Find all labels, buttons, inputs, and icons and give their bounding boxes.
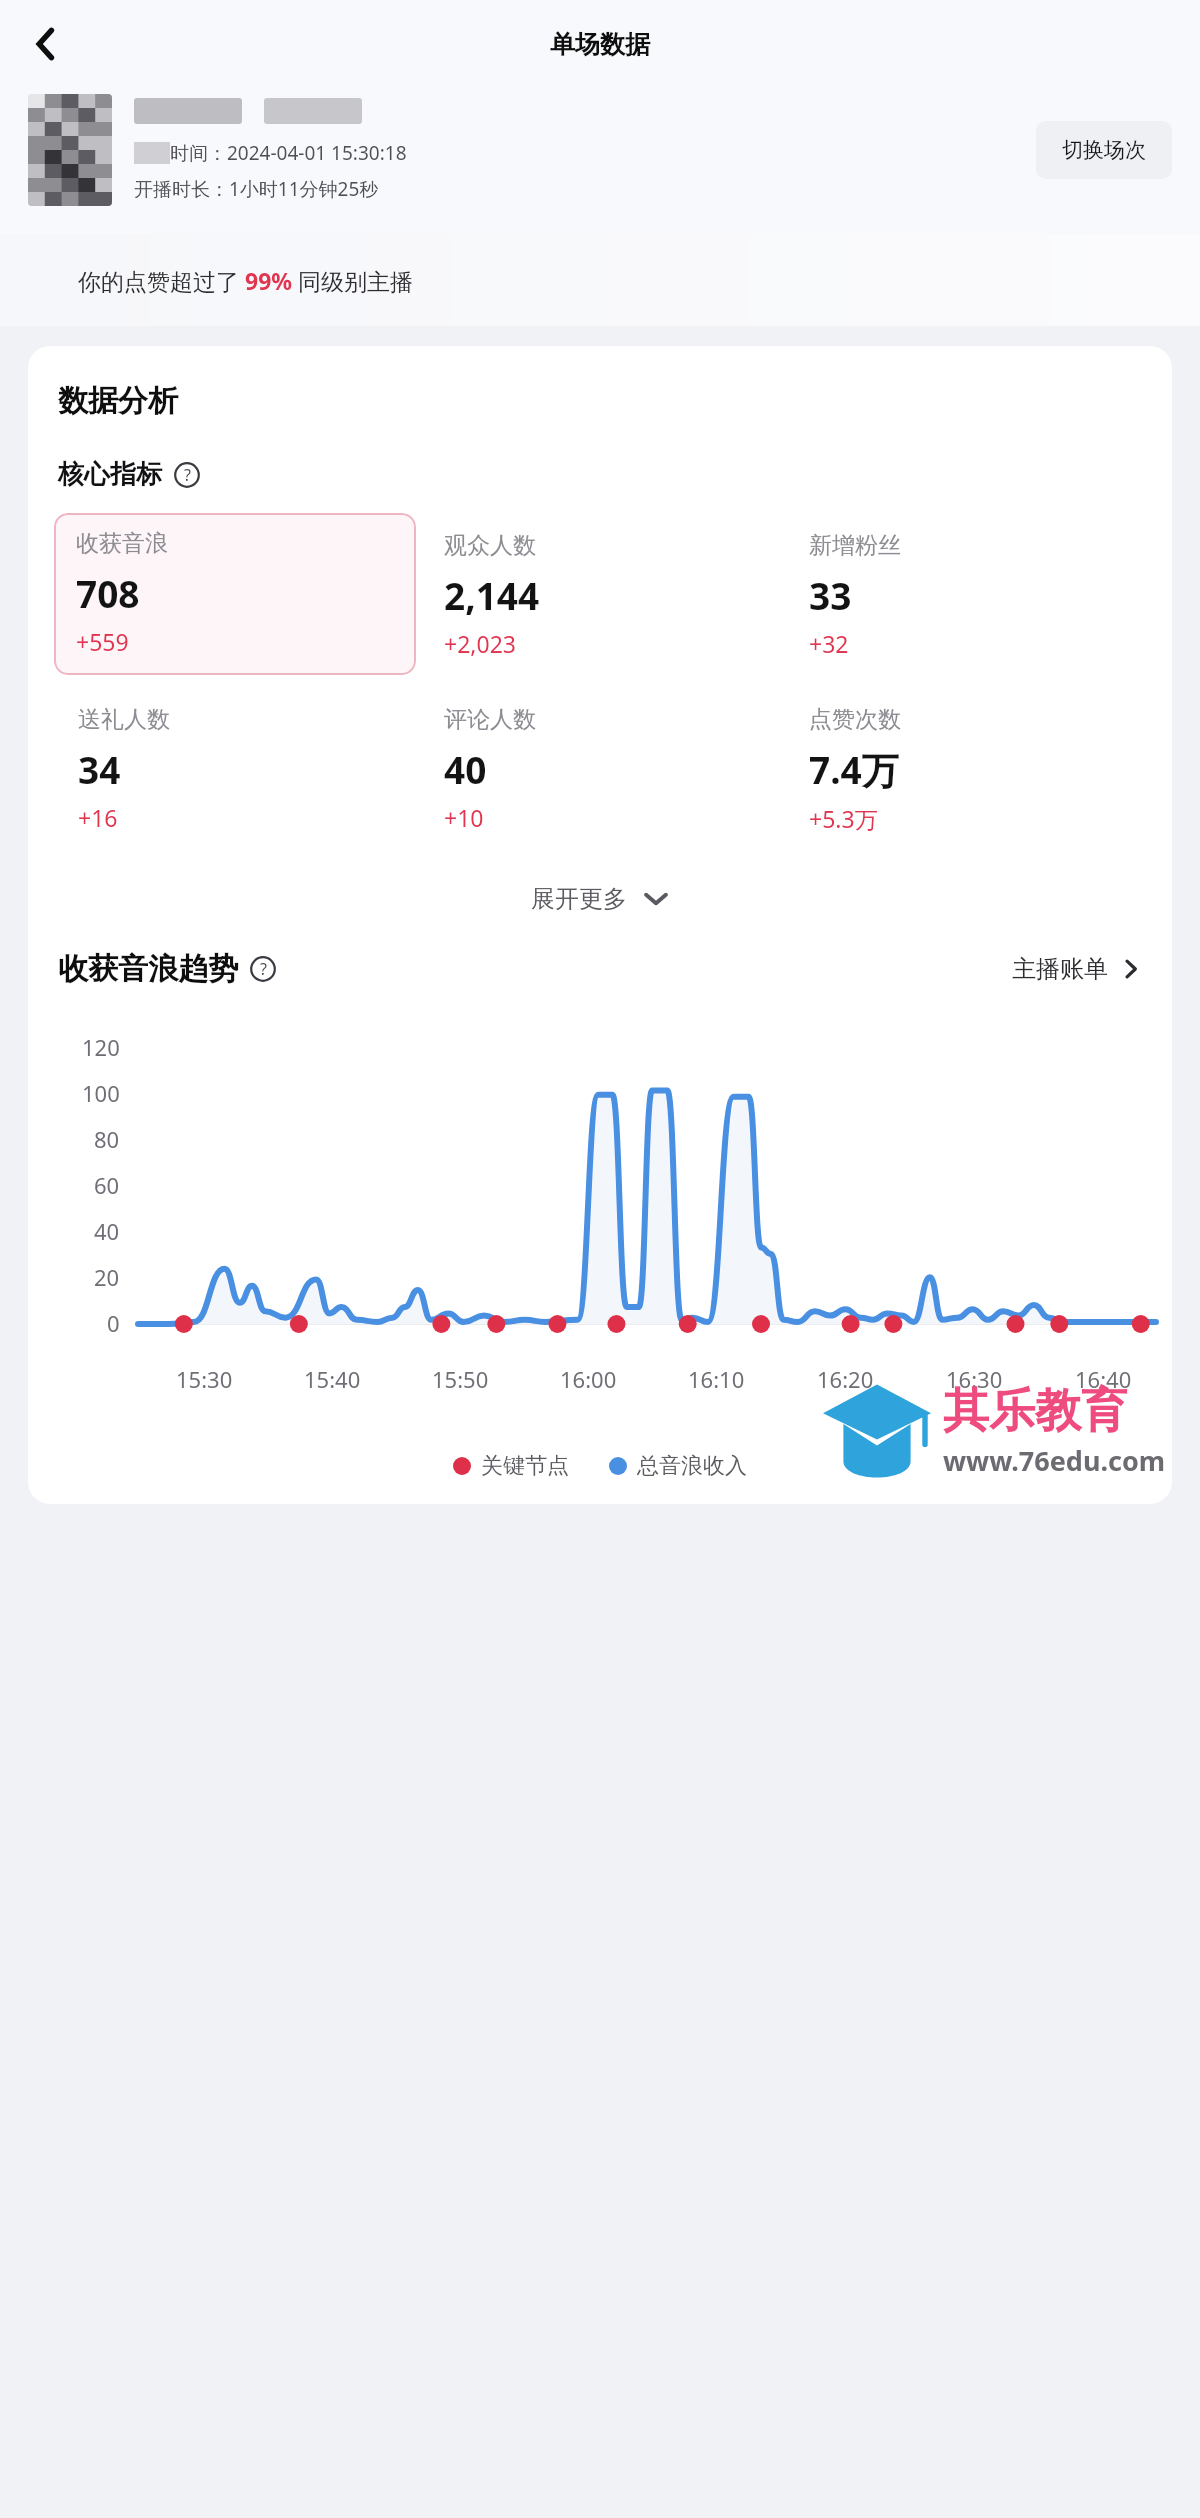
staticText: 15:40: [304, 1364, 361, 1394]
staticText: 数据分析: [58, 382, 178, 420]
staticText: 40: [94, 1216, 120, 1246]
staticText: 80: [94, 1124, 120, 1154]
staticText: 观众人数: [444, 531, 536, 560]
staticText: 33: [809, 570, 852, 620]
staticText: 34: [78, 744, 121, 794]
button[interactable]: 主播账单: [1012, 954, 1142, 984]
button[interactable]: 返回: [14, 12, 78, 76]
staticText: 核心指标: [58, 458, 162, 491]
staticText: 16:00: [560, 1364, 617, 1394]
staticText: +5.3万: [809, 803, 878, 834]
staticText: 708: [76, 568, 140, 618]
staticText: 16:20: [817, 1364, 874, 1394]
staticText: 切换场次: [1062, 137, 1146, 163]
button[interactable]: 送礼人数: [54, 687, 416, 851]
staticText: 其乐教育: [943, 1382, 1127, 1440]
staticText: 评论人数: [444, 705, 536, 734]
staticText: 15:30: [176, 1364, 233, 1394]
button[interactable]: 你的点赞超过了 99% 同级别主播: [0, 234, 1200, 326]
staticText: 点赞次数: [809, 705, 901, 734]
staticText: 20: [94, 1262, 120, 1292]
button[interactable]: 收获音浪: [54, 513, 416, 675]
button[interactable]: 点赞次数: [785, 687, 1146, 852]
staticText: 7.4万: [809, 744, 899, 795]
button[interactable]: 核心指标: [58, 458, 200, 491]
button[interactable]: 评论人数: [420, 687, 781, 851]
staticText: 60: [94, 1170, 120, 1200]
staticText: +16: [78, 802, 118, 833]
staticText: 100: [82, 1078, 120, 1108]
button[interactable]: 展开更多: [28, 870, 1172, 928]
staticText: 120: [82, 1032, 120, 1062]
staticText: ?: [260, 958, 267, 980]
staticText: 你的点赞超过了 99% 同级别主播: [78, 265, 414, 296]
staticText: 16:40: [1075, 1364, 1132, 1394]
staticText: 收获音浪趋势: [58, 950, 238, 988]
staticText: 收获音浪: [76, 529, 168, 558]
staticText: 16:10: [688, 1364, 745, 1394]
staticText: 16:30: [946, 1364, 1003, 1394]
staticText: 关键节点: [481, 1452, 569, 1480]
staticText: 40: [444, 744, 487, 794]
button[interactable]: 新增粉丝: [785, 513, 1146, 677]
staticText: 单场数据: [550, 29, 650, 60]
staticText: 开播时长：1小时11分钟25秒: [134, 176, 379, 202]
staticText: 0: [107, 1308, 120, 1338]
staticText: 展开更多: [531, 884, 627, 914]
staticText: +559: [76, 626, 129, 657]
button[interactable]: 观众人数: [420, 513, 781, 677]
staticText: +2,023: [444, 628, 516, 659]
staticText: +10: [444, 802, 484, 833]
staticText: 主播账单: [1012, 954, 1108, 984]
staticText: 15:50: [432, 1364, 489, 1394]
staticText: ?: [184, 464, 191, 486]
button[interactable]: 收获音浪趋势: [58, 950, 276, 988]
staticText: +32: [809, 628, 849, 659]
staticText: 2,144: [444, 570, 540, 620]
staticText: 时间：2024-04-01 15:30:18: [170, 140, 407, 166]
staticText: 送礼人数: [78, 705, 170, 734]
staticText: www.76edu.com: [943, 1442, 1166, 1479]
button[interactable]: 切换场次: [1036, 121, 1172, 179]
staticText: 新增粉丝: [809, 531, 901, 560]
staticText: 总音浪收入: [637, 1452, 747, 1480]
